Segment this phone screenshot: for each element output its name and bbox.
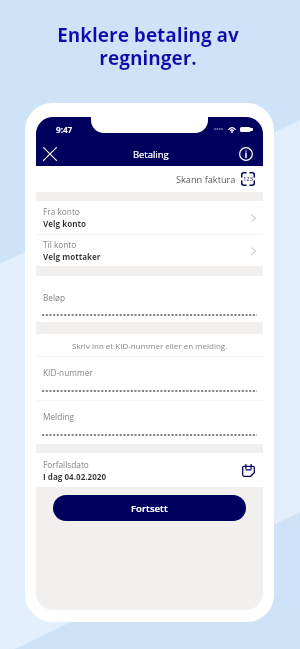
staticText: Fra konto [43,206,80,217]
staticText: Beløp [43,292,66,303]
button[interactable]: Fra konto [36,201,263,234]
staticText: Melding [43,411,74,422]
button[interactable]: Beløp [36,276,263,322]
button[interactable]: Melding [36,401,263,444]
button[interactable]: Informasjon [236,144,256,164]
button[interactable]: Skann faktura [36,166,263,192]
staticText: Skann faktura [176,173,236,186]
staticText: Til konto [43,239,77,250]
staticText: Velg mottaker [43,251,101,262]
staticText: Forfallsdato [43,459,89,470]
staticText: 9:47 [56,124,73,135]
button[interactable]: KID-nummer [36,357,263,400]
staticText: 123 [243,175,253,183]
button[interactable]: Velg dato [242,464,255,477]
staticText: Betaling [133,148,169,161]
staticText: KID-nummer [43,367,93,378]
staticText: Skriv inn et KID-nummer eller en melding… [72,340,228,351]
button[interactable]: Skann faktura [241,172,255,186]
staticText: Velg konto [43,218,87,229]
staticText: I dag 04.02.2020 [43,471,107,482]
button[interactable]: Til konto [36,235,263,266]
staticText: Enklere betaling av regninger. [57,22,239,71]
button[interactable]: Forfallsdato [36,453,263,487]
staticText: Fortsett [131,502,168,515]
button[interactable]: Lukk [40,144,60,164]
button[interactable]: Fortsett [53,495,246,521]
